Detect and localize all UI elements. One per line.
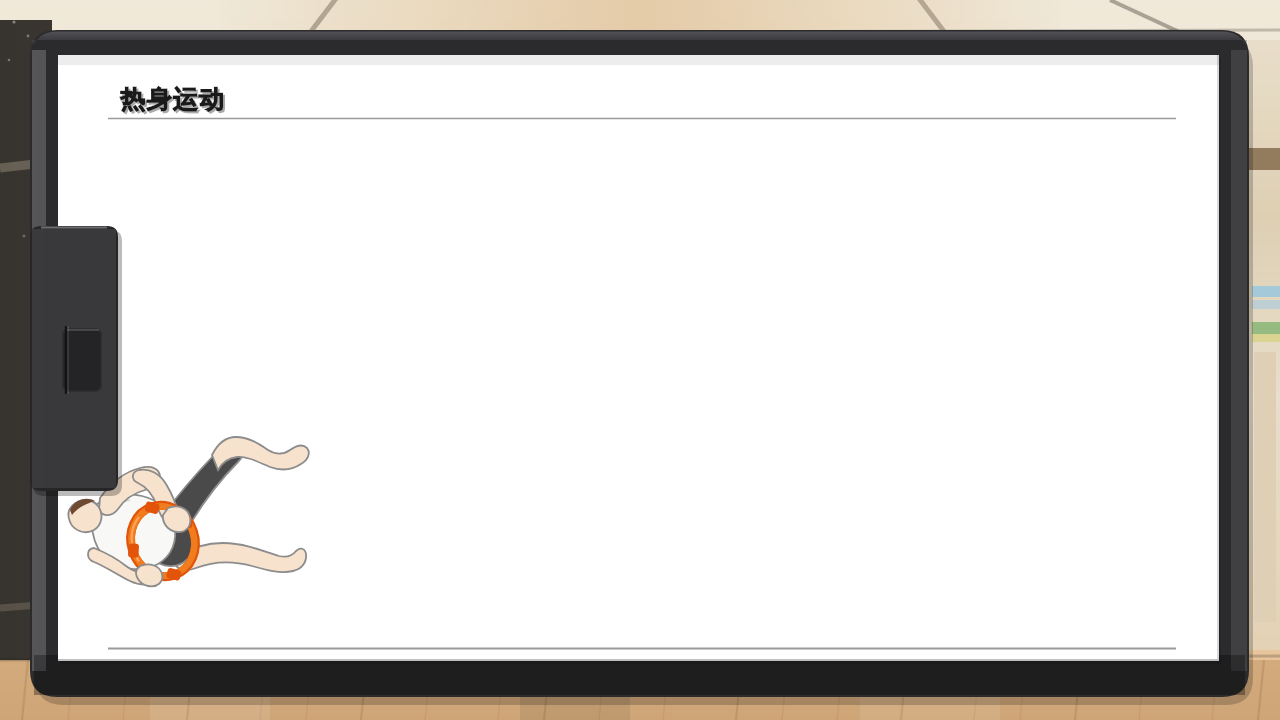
other: 热身运动 页面: [0, 0, 1280, 720]
button[interactable]: [0, 0, 1280, 720]
